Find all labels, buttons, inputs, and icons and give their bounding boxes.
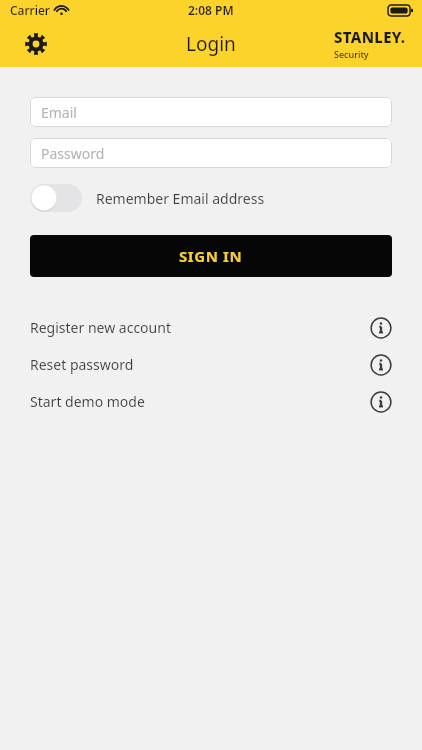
staticText: 2:08 PM (188, 2, 234, 18)
staticText: Login (186, 31, 236, 57)
button[interactable]: Start demo mode (0, 383, 422, 420)
staticText: STANLEY. (334, 27, 406, 47)
button[interactable]: Email (30, 97, 392, 127)
staticText: SIGN IN (179, 246, 243, 266)
staticText: Security (334, 48, 369, 60)
other: Info (370, 354, 392, 376)
other: Info (370, 317, 392, 339)
button[interactable]: Password (30, 138, 392, 168)
staticText: Reset password (30, 355, 134, 374)
staticText: Register new account (30, 318, 171, 337)
button[interactable]: Remember Email address (30, 183, 392, 213)
staticText: Email (41, 103, 77, 122)
other: Info (370, 391, 392, 413)
button[interactable]: Settings (16, 24, 56, 64)
staticText: Carrier (10, 2, 50, 18)
staticText: Password (41, 144, 105, 163)
button[interactable]: Reset password (0, 346, 422, 383)
staticText: Remember Email address (96, 189, 265, 208)
button[interactable]: Register new account (0, 309, 422, 346)
button[interactable]: SIGN IN (30, 235, 392, 277)
staticText: Start demo mode (30, 392, 145, 411)
button[interactable]: Stanley Security (334, 27, 406, 60)
